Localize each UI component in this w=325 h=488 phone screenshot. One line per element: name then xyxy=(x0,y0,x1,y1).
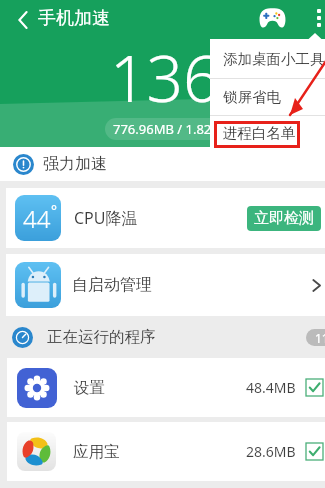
staticText: 添加桌面小工具 xyxy=(223,50,325,68)
button[interactable]: 正在运行的程序 xyxy=(0,316,325,358)
button[interactable]: 强力加速 xyxy=(0,147,325,181)
button[interactable]: 设置 xyxy=(7,358,325,417)
button[interactable]: Select 应用宝 xyxy=(305,442,324,461)
staticText: 应用宝 xyxy=(73,442,120,462)
staticText: CPU降温 xyxy=(74,207,138,229)
staticText: 11个 xyxy=(315,330,325,346)
button[interactable]: Game boost xyxy=(253,0,291,36)
staticText: 776.96MB / 1.82GB xyxy=(113,120,230,138)
button[interactable]: Back xyxy=(6,3,40,37)
button[interactable]: 应用宝 xyxy=(7,422,325,481)
button[interactable]: 进程白名单 xyxy=(210,116,325,149)
staticText: 立即检测 xyxy=(254,209,314,228)
button[interactable]: 添加桌面小工具 xyxy=(210,39,325,78)
staticText: 强力加速 xyxy=(43,154,107,174)
staticText: 28.6MB xyxy=(246,442,296,461)
staticText: 锁屏省电 xyxy=(223,88,281,106)
staticText: 自启动管理 xyxy=(72,275,152,295)
staticText: 进程白名单 xyxy=(223,124,296,142)
staticText: 48.4MB xyxy=(246,378,296,397)
staticText: 136 xyxy=(110,34,220,121)
staticText: 设置 xyxy=(74,378,105,398)
staticText: 正在运行的程序 xyxy=(47,327,156,347)
staticText: 手机加速 xyxy=(38,7,110,30)
button[interactable]: Select 设置 xyxy=(305,378,324,397)
button[interactable]: 立即检测 xyxy=(247,206,321,231)
button[interactable]: 锁屏省电 xyxy=(210,79,325,115)
button[interactable]: 自启动管理 xyxy=(6,254,325,316)
button[interactable]: 44 xyxy=(6,188,325,248)
staticText: 44 xyxy=(23,202,51,235)
staticText: ° xyxy=(51,201,57,220)
button[interactable]: More options xyxy=(306,0,325,36)
